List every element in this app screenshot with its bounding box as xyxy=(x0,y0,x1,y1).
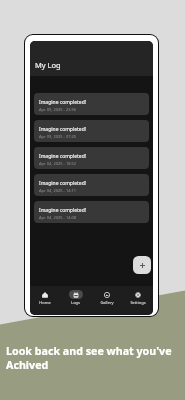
button[interactable]: Add new log xyxy=(133,256,151,274)
staticText: Settings xyxy=(130,300,146,305)
button[interactable]: Logs xyxy=(60,290,91,312)
button[interactable]: Gallery xyxy=(91,290,122,312)
staticText: Logs xyxy=(71,300,80,305)
staticText: Look back and see what you've Achived xyxy=(6,344,182,372)
staticText: Home xyxy=(39,300,51,305)
button[interactable]: Imagine completed! xyxy=(34,93,149,115)
staticText: Apr 09, 2025 - 07:25 xyxy=(39,134,77,139)
button[interactable]: Settings xyxy=(122,290,153,312)
staticText: My Log xyxy=(35,60,61,70)
staticText: Gallery xyxy=(100,300,114,305)
staticText: Imagine completed! xyxy=(39,126,87,133)
button[interactable]: Imagine completed! xyxy=(34,120,149,142)
staticText: Apr 04, 2025 - 14:11 xyxy=(39,188,77,193)
button[interactable]: Home xyxy=(30,290,60,312)
staticText: Imagine completed! xyxy=(39,207,87,214)
staticText: Apr 04, 2025 - 14:08 xyxy=(39,215,77,220)
button[interactable]: Imagine completed! xyxy=(34,174,149,196)
staticText: Apr 09, 2025 - 23:56 xyxy=(39,107,77,112)
staticText: Imagine completed! xyxy=(39,180,87,187)
button[interactable]: Imagine completed! xyxy=(34,147,149,169)
button[interactable]: Imagine completed! xyxy=(34,201,149,223)
staticText: Imagine completed! xyxy=(39,99,87,106)
staticText: Apr 04, 2025 - 18:52 xyxy=(39,161,77,166)
staticText: Imagine completed! xyxy=(39,153,87,160)
